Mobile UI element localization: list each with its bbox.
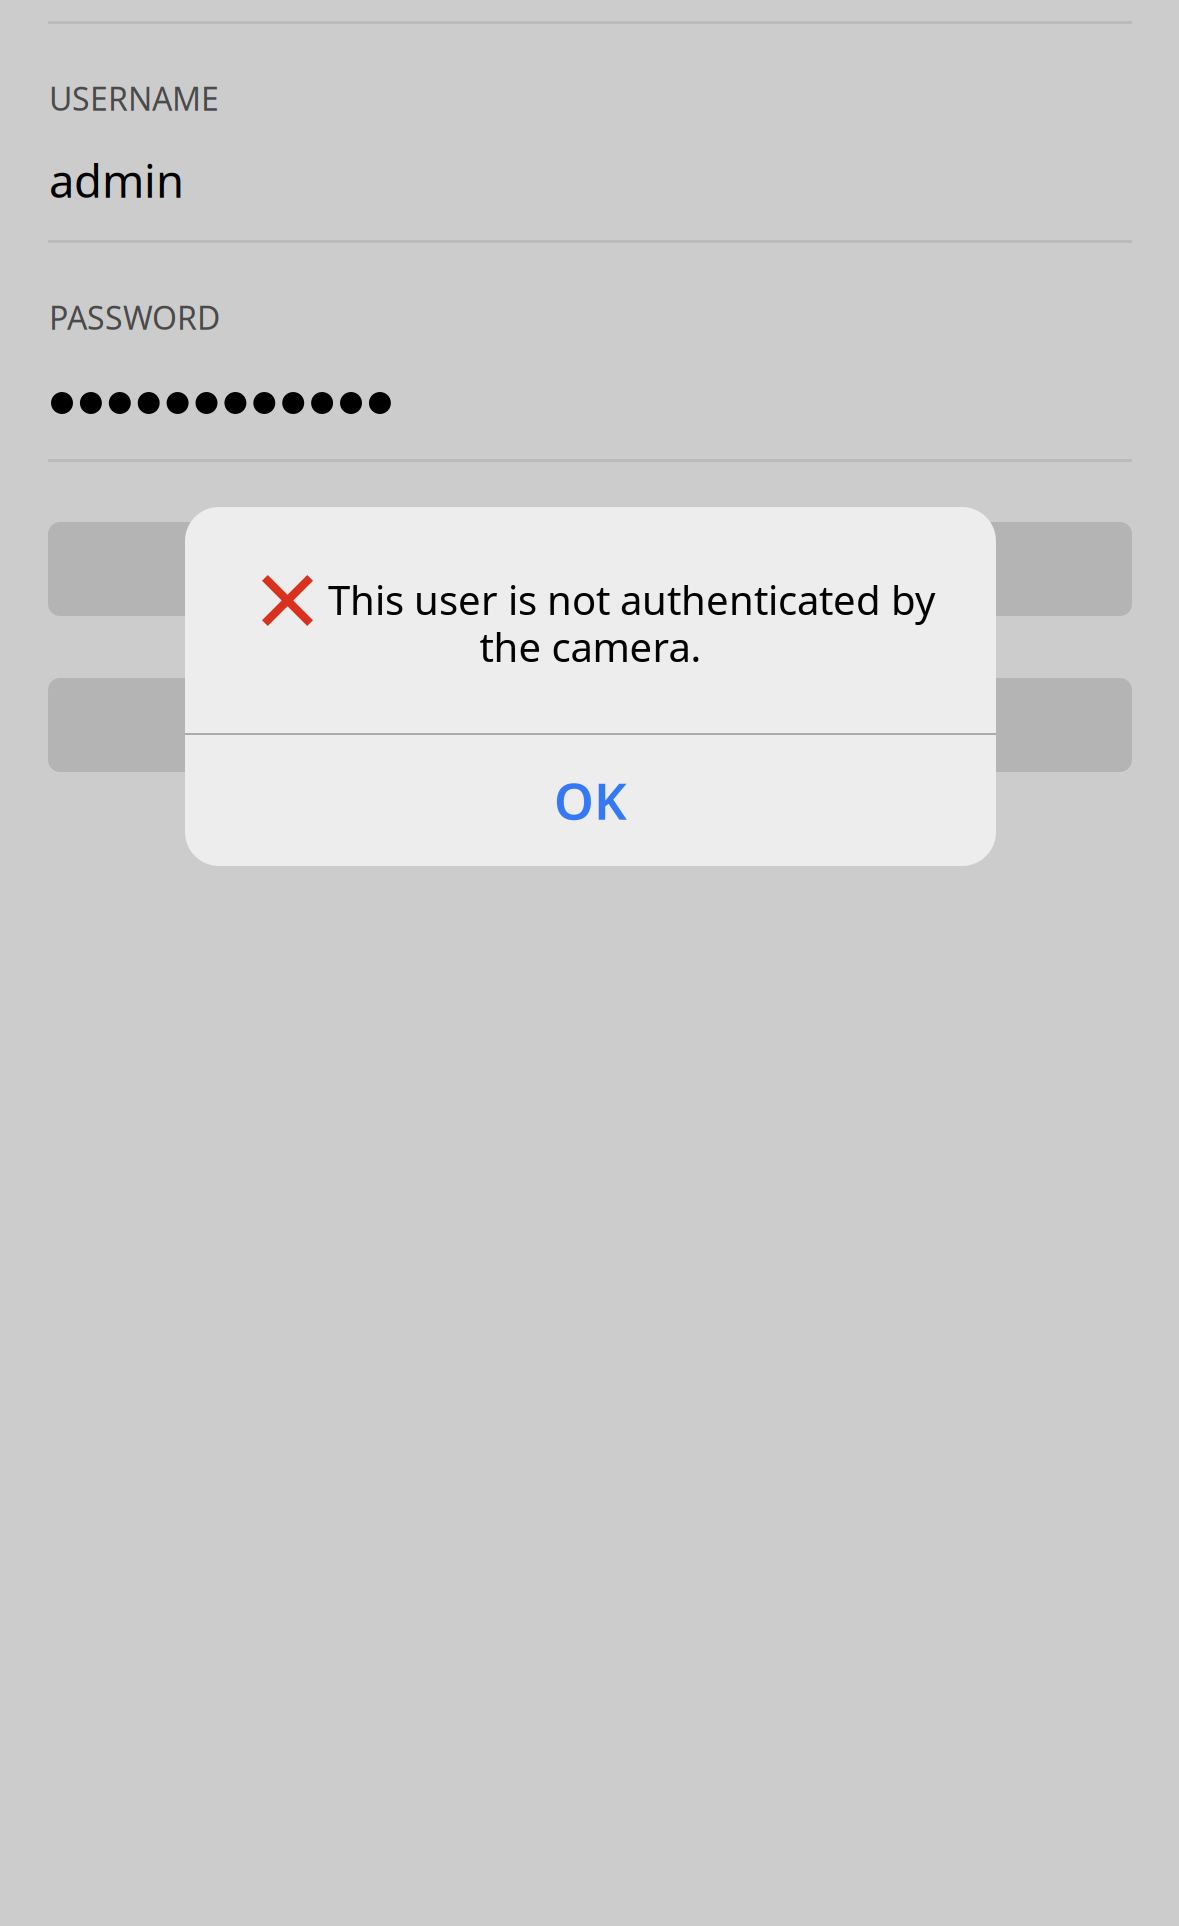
- button[interactable]: OK: [185, 735, 996, 865]
- staticText: admin: [49, 150, 184, 210]
- staticText: the camera.: [479, 620, 701, 673]
- button[interactable]: PASSWORD: [48, 296, 1132, 481]
- button[interactable]: [48, 678, 1132, 772]
- staticText: PASSWORD: [49, 296, 220, 338]
- button[interactable]: [48, 522, 1132, 616]
- staticText: OK: [554, 766, 627, 834]
- staticText: USERNAME: [49, 77, 219, 119]
- button[interactable]: USERNAME: [48, 77, 1132, 262]
- staticText: This user is not authenticated by: [328, 573, 935, 626]
